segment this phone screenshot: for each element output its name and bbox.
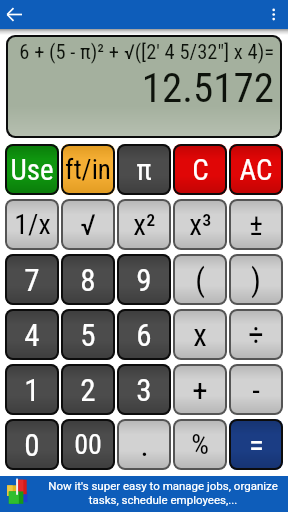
staticText: 4	[24, 317, 40, 353]
staticText: 1/x	[14, 208, 51, 241]
staticText: %	[191, 428, 209, 461]
button[interactable]: %	[173, 419, 227, 470]
button[interactable]: +	[173, 364, 227, 415]
staticText: 7	[24, 262, 40, 298]
staticText: ft/in	[65, 154, 111, 186]
button[interactable]: )	[229, 254, 283, 305]
button[interactable]: 1	[5, 364, 59, 415]
staticText: 8	[80, 262, 96, 298]
staticText: Use	[10, 153, 54, 187]
staticText: (	[195, 262, 205, 298]
button[interactable]: 3	[117, 364, 171, 415]
staticText: )	[251, 262, 261, 298]
staticText: 0	[24, 427, 40, 463]
button[interactable]: ÷	[229, 309, 283, 360]
button[interactable]: 00	[61, 419, 115, 470]
button[interactable]: -	[229, 364, 283, 415]
staticText: π	[136, 153, 152, 187]
button[interactable]: 8	[61, 254, 115, 305]
button[interactable]: ft/in	[61, 144, 115, 195]
button[interactable]: Back	[0, 0, 29, 29]
button[interactable]: 5	[61, 309, 115, 360]
button[interactable]: ±	[229, 199, 283, 250]
button[interactable]: 4	[5, 309, 59, 360]
staticText: 9	[136, 262, 152, 298]
button[interactable]: 2	[61, 364, 115, 415]
staticText: 6	[136, 317, 152, 353]
button[interactable]: AC	[229, 144, 283, 195]
button[interactable]: 1/x	[5, 199, 59, 250]
staticText: 1	[24, 372, 40, 408]
button[interactable]: More options	[259, 0, 288, 29]
button[interactable]: 7	[5, 254, 59, 305]
staticText: 00	[74, 428, 102, 461]
button[interactable]: x³	[173, 199, 227, 250]
button[interactable]: .	[117, 419, 171, 470]
staticText: 6 + (5 - π)² + √([2' 4 5/32"] x 4)=	[15, 40, 274, 64]
button[interactable]: C	[173, 144, 227, 195]
staticText: +	[192, 372, 208, 408]
button[interactable]: Use	[5, 144, 59, 195]
staticText: C	[192, 153, 209, 187]
staticText: x²	[133, 208, 156, 242]
button[interactable]: Advertisement	[0, 476, 288, 512]
button[interactable]: √	[61, 199, 115, 250]
staticText: =	[249, 427, 264, 463]
button[interactable]: (	[173, 254, 227, 305]
button[interactable]: π	[117, 144, 171, 195]
staticText: √	[80, 208, 96, 242]
staticText: -	[252, 372, 260, 408]
staticText: ÷	[248, 317, 264, 353]
staticText: 5	[80, 317, 96, 353]
staticText: x	[193, 317, 207, 353]
staticText: Now it's super easy to manage jobs, orga…	[42, 479, 284, 507]
staticText: 3	[136, 372, 152, 408]
staticText: .	[140, 427, 149, 463]
button[interactable]: 6	[117, 309, 171, 360]
button[interactable]: =	[229, 419, 283, 470]
button[interactable]: x	[173, 309, 227, 360]
staticText: AC	[239, 153, 273, 187]
button[interactable]: x²	[117, 199, 171, 250]
button[interactable]: 0	[5, 419, 59, 470]
staticText: 12.5172	[15, 64, 274, 112]
staticText: 2	[80, 372, 96, 408]
staticText: x³	[189, 208, 212, 242]
staticText: ±	[249, 208, 263, 242]
button[interactable]: 9	[117, 254, 171, 305]
